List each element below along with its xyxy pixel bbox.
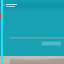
button[interactable] (0, 56, 64, 64)
button[interactable]: Avatar (0, 0, 64, 12)
button[interactable]: Accent bar (1, 0, 3, 64)
